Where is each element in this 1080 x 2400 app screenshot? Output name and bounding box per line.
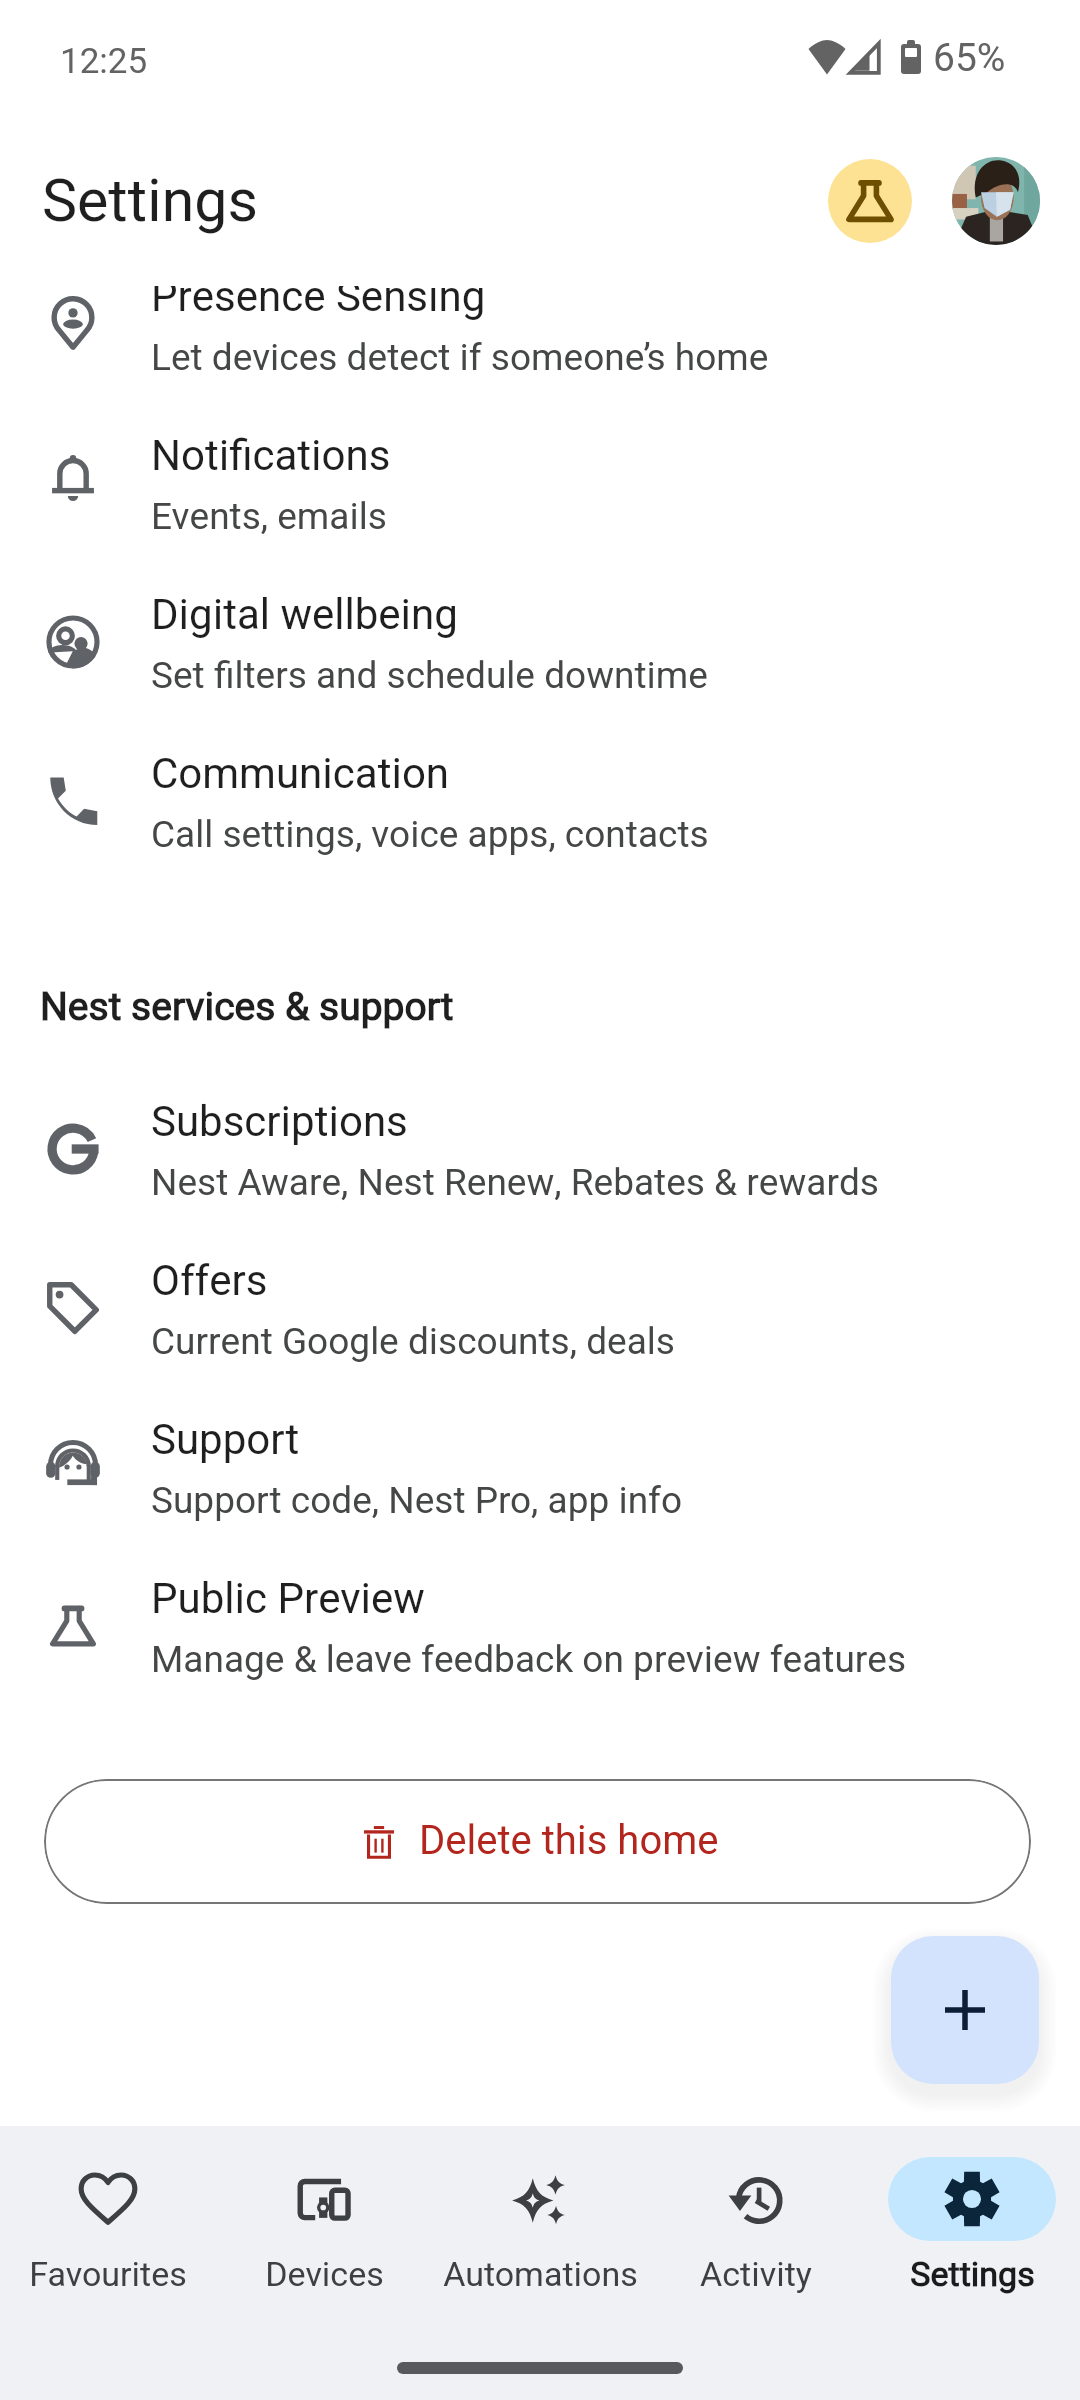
staticText: Devices: [265, 2250, 384, 2300]
staticText: Subscriptions: [151, 1092, 408, 1154]
staticText: Nest Aware, Nest Renew, Rebates & reward…: [151, 1156, 879, 1210]
staticText: Offers: [151, 1251, 268, 1313]
button[interactable]: Public Preview: [828, 159, 912, 243]
button[interactable]: Account: [952, 157, 1040, 245]
button[interactable]: Support: [0, 1410, 1080, 1560]
staticText: Settings: [42, 159, 258, 246]
button[interactable]: Subscriptions: [0, 1092, 1080, 1242]
staticText: Manage & leave feedback on preview featu…: [151, 1633, 907, 1687]
staticText: Digital wellbeing: [151, 585, 458, 647]
button[interactable]: Communication: [0, 744, 1080, 894]
button[interactable]: Delete this home: [44, 1779, 1031, 1904]
button[interactable]: Devices: [216, 2126, 432, 2316]
button[interactable]: Add: [891, 1936, 1039, 2084]
staticText: Automations: [443, 2250, 638, 2300]
staticText: Support: [151, 1410, 300, 1472]
staticText: 12:25: [60, 36, 148, 87]
staticText: Nest services & support: [40, 979, 454, 1036]
button[interactable]: Public Preview: [0, 1569, 1080, 1719]
staticText: Let devices detect if someone’s home: [151, 331, 769, 385]
staticText: Favourites: [29, 2250, 187, 2300]
staticText: Support code, Nest Pro, app info: [151, 1474, 683, 1528]
button[interactable]: Digital wellbeing: [0, 585, 1080, 735]
staticText: Events, emails: [151, 490, 387, 544]
button[interactable]: Notifications: [0, 426, 1080, 576]
staticText: Notifications: [151, 426, 391, 488]
staticText: Delete this home: [419, 1812, 719, 1871]
button[interactable]: Activity: [648, 2126, 864, 2316]
button[interactable]: Settings: [864, 2126, 1080, 2316]
staticText: Communication: [151, 744, 450, 806]
staticText: Public Preview: [151, 1569, 425, 1631]
staticText: Activity: [700, 2250, 812, 2300]
staticText: Presence Sensing: [151, 286, 486, 329]
staticText: Current Google discounts, deals: [151, 1315, 675, 1369]
button[interactable]: Automations: [432, 2126, 648, 2316]
staticText: Call settings, voice apps, contacts: [151, 808, 709, 862]
staticText: Set filters and schedule downtime: [151, 649, 708, 703]
button[interactable]: Offers: [0, 1251, 1080, 1401]
button[interactable]: Favourites: [0, 2126, 216, 2316]
staticText: Settings: [910, 2250, 1035, 2300]
staticText: 65%: [933, 30, 1006, 87]
button[interactable]: Presence Sensing: [0, 286, 1080, 417]
